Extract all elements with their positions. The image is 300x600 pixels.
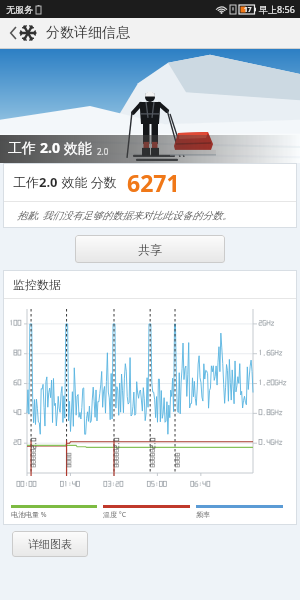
staticText: 监控数据 — [13, 277, 61, 292]
staticText: 温度 °C — [103, 510, 127, 520]
staticText: 工作 — [13, 174, 39, 190]
staticText: 效能 — [60, 138, 92, 157]
staticText: 效能 分数 — [58, 173, 117, 191]
staticText: 无服务 — [6, 4, 33, 15]
staticText: 工作 — [8, 138, 40, 157]
staticText: 17 — [244, 5, 252, 14]
staticText: 2.0 — [40, 138, 60, 157]
staticText: 早上8:56 — [259, 3, 295, 15]
staticText: 电池电量 % — [11, 510, 47, 520]
button[interactable]: 详细图表 — [12, 531, 88, 557]
staticText: 6271 — [127, 167, 180, 198]
staticText: 2.0 — [39, 173, 58, 191]
staticText: 详细图表 — [28, 537, 72, 551]
staticText: 共享 — [138, 242, 162, 257]
button[interactable]: 共享 — [75, 235, 225, 263]
staticText: 抱歉, 我们没有足够的数据来对比此设备的分数。 — [17, 208, 233, 222]
staticText: 分数详细信息 — [46, 24, 130, 42]
button[interactable]: 返回 — [0, 18, 46, 48]
staticText: 2.0 — [97, 146, 109, 157]
staticText: 频率 — [196, 510, 210, 519]
